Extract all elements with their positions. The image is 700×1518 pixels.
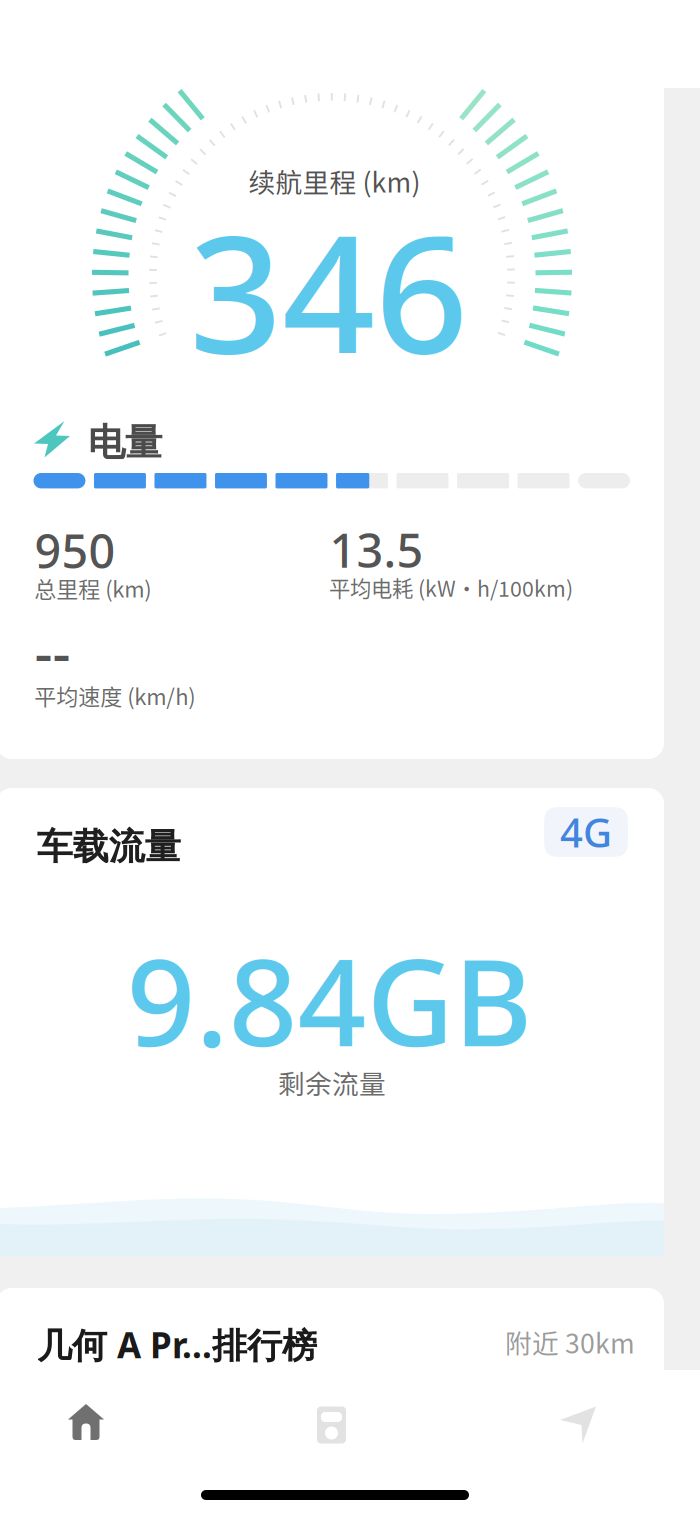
staticText: --: [35, 615, 71, 689]
button[interactable]: Home: [31, 1382, 141, 1462]
staticText: 9.84GB: [126, 920, 531, 1079]
button[interactable]: 4G: [544, 807, 628, 857]
button[interactable]: Navigation: [523, 1385, 633, 1465]
staticText: 950: [35, 519, 116, 581]
staticText: 4G: [560, 805, 612, 858]
staticText: 平均速度 (km/h): [34, 679, 195, 711]
staticText: 剩余流量: [278, 1063, 386, 1102]
staticText: 平均电耗 (kW·h/100km): [329, 572, 573, 603]
staticText: 续航里程 (km): [248, 161, 420, 200]
button[interactable]: My Vehicle: [276, 1385, 386, 1465]
staticText: 13.5: [330, 519, 424, 581]
staticText: 346: [189, 182, 468, 398]
staticText: 总里程 (km): [34, 572, 151, 604]
staticText: 附近 30km: [505, 1323, 635, 1361]
button[interactable]: 几何 A Pr...排行榜: [0, 1288, 664, 1370]
staticText: 几何 A Pr...排行榜: [37, 1321, 317, 1369]
staticText: 车载流量: [37, 824, 181, 869]
staticText: 电量: [88, 419, 162, 466]
